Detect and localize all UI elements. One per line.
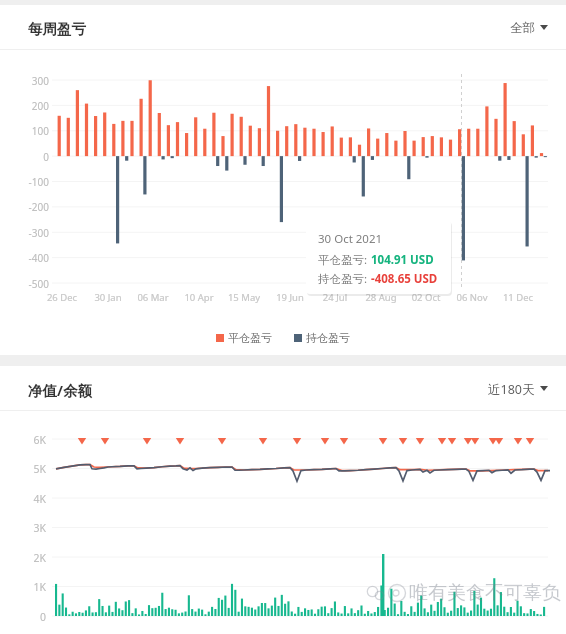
staticText: 30 Jan [78, 291, 138, 304]
staticText: 24 Jul [305, 291, 365, 304]
staticText: -408.65 USD [371, 271, 438, 287]
staticText: -300 [9, 226, 49, 240]
button[interactable]: 全部 [508, 13, 550, 41]
staticText: 2K [5, 551, 46, 565]
staticText: 平仓盈亏 [228, 331, 272, 345]
staticText: 持仓盈亏: [318, 271, 371, 287]
staticText: 30 Oct 2021 [318, 231, 383, 247]
staticText: 06 Nov [442, 291, 502, 304]
staticText: 平仓盈亏: [318, 252, 371, 268]
staticText: -400 [9, 251, 49, 265]
staticText: -200 [9, 200, 49, 214]
staticText: 唯有美食不可辜负 [409, 581, 561, 605]
button[interactable]: 平仓盈亏 [216, 331, 272, 345]
staticText: 0 [5, 610, 46, 624]
button[interactable]: 近180天 [486, 374, 550, 403]
staticText: 06 Mar [123, 291, 183, 304]
staticText: 02 Oct [396, 291, 456, 304]
staticText: 6K [5, 433, 46, 447]
staticText: 11 Dec [488, 291, 548, 304]
staticText: -100 [9, 175, 49, 189]
button[interactable]: 持仓盈亏 [294, 331, 350, 345]
staticText: 100 [9, 124, 49, 138]
staticText: 10 Apr [169, 291, 229, 304]
staticText: 104.91 USD [371, 252, 434, 268]
staticText: -500 [9, 277, 49, 291]
staticText: 300 [9, 74, 49, 88]
staticText: 4K [5, 492, 46, 506]
staticText: 19 Jun [260, 291, 320, 304]
staticText: 26 Dec [32, 291, 92, 304]
staticText: 3K [5, 521, 46, 535]
staticText: 200 [9, 99, 49, 113]
staticText: 近180天 [488, 381, 535, 398]
staticText: 0 [9, 150, 49, 164]
staticText: 持仓盈亏 [306, 331, 350, 345]
staticText: 每周盈亏 [28, 20, 86, 38]
staticText: 28 Aug [351, 291, 411, 304]
staticText: 全部 [510, 20, 535, 36]
staticText: 5K [5, 462, 46, 476]
staticText: 1K [5, 580, 46, 594]
staticText: 净值/余额 [28, 380, 93, 400]
staticText: 15 May [214, 291, 274, 304]
